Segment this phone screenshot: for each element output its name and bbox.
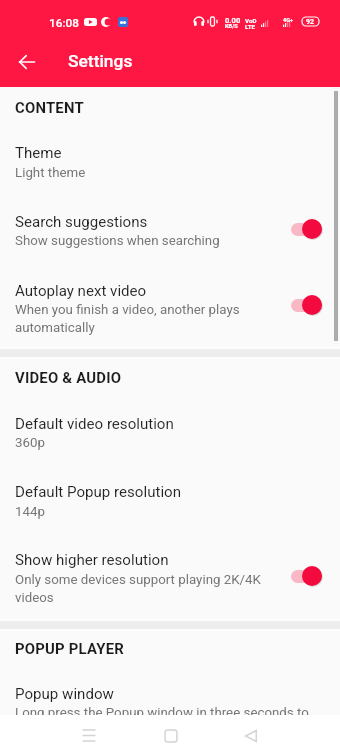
button[interactable] — [0, 663, 340, 715]
staticText: Theme — [15, 144, 62, 162]
staticText: POPUP PLAYER — [15, 640, 124, 657]
staticText: LTE — [245, 23, 255, 30]
staticText: When you finish a video, another plays a… — [15, 302, 240, 335]
staticText: Default Popup resolution — [15, 483, 182, 501]
button[interactable]: Toggle — [283, 290, 330, 320]
staticText: VoD — [245, 17, 257, 24]
staticText: 4G+ — [283, 17, 293, 23]
staticText: 0.00 — [225, 16, 241, 25]
staticText: Show suggestions when searching — [15, 233, 220, 249]
button[interactable] — [0, 459, 340, 519]
button[interactable]: Toggle — [283, 561, 330, 591]
staticText: Popup window — [15, 685, 114, 703]
staticText: 360p — [15, 435, 45, 451]
staticText: Long press the Popup window in three sec… — [15, 705, 309, 721]
staticText: Only some devices support playing 2K/4K … — [15, 572, 261, 605]
staticText: KB/S — [225, 23, 238, 30]
button[interactable]: Recent apps — [66, 715, 111, 756]
staticText: 144p — [15, 504, 45, 520]
staticText: Autoplay next video — [15, 282, 147, 300]
button[interactable]: Back — [8, 43, 45, 80]
button[interactable] — [0, 256, 340, 332]
button[interactable]: Home — [148, 715, 193, 756]
staticText: VIDEO & AUDIO — [15, 369, 122, 386]
staticText: 92 — [306, 18, 315, 26]
staticText: Light theme — [15, 165, 86, 181]
staticText: Search suggestions — [15, 213, 148, 231]
staticText: CONTENT — [15, 99, 84, 116]
button[interactable] — [0, 120, 340, 180]
button[interactable]: Toggle — [283, 214, 330, 244]
button[interactable] — [0, 392, 340, 452]
staticText: Show higher resolution — [15, 551, 169, 569]
staticText: Default video resolution — [15, 415, 174, 433]
button[interactable] — [0, 524, 340, 604]
staticText: Settings — [68, 51, 133, 71]
staticText: 16:08 — [49, 16, 79, 30]
button[interactable]: Back — [228, 715, 273, 756]
button[interactable] — [0, 190, 340, 252]
